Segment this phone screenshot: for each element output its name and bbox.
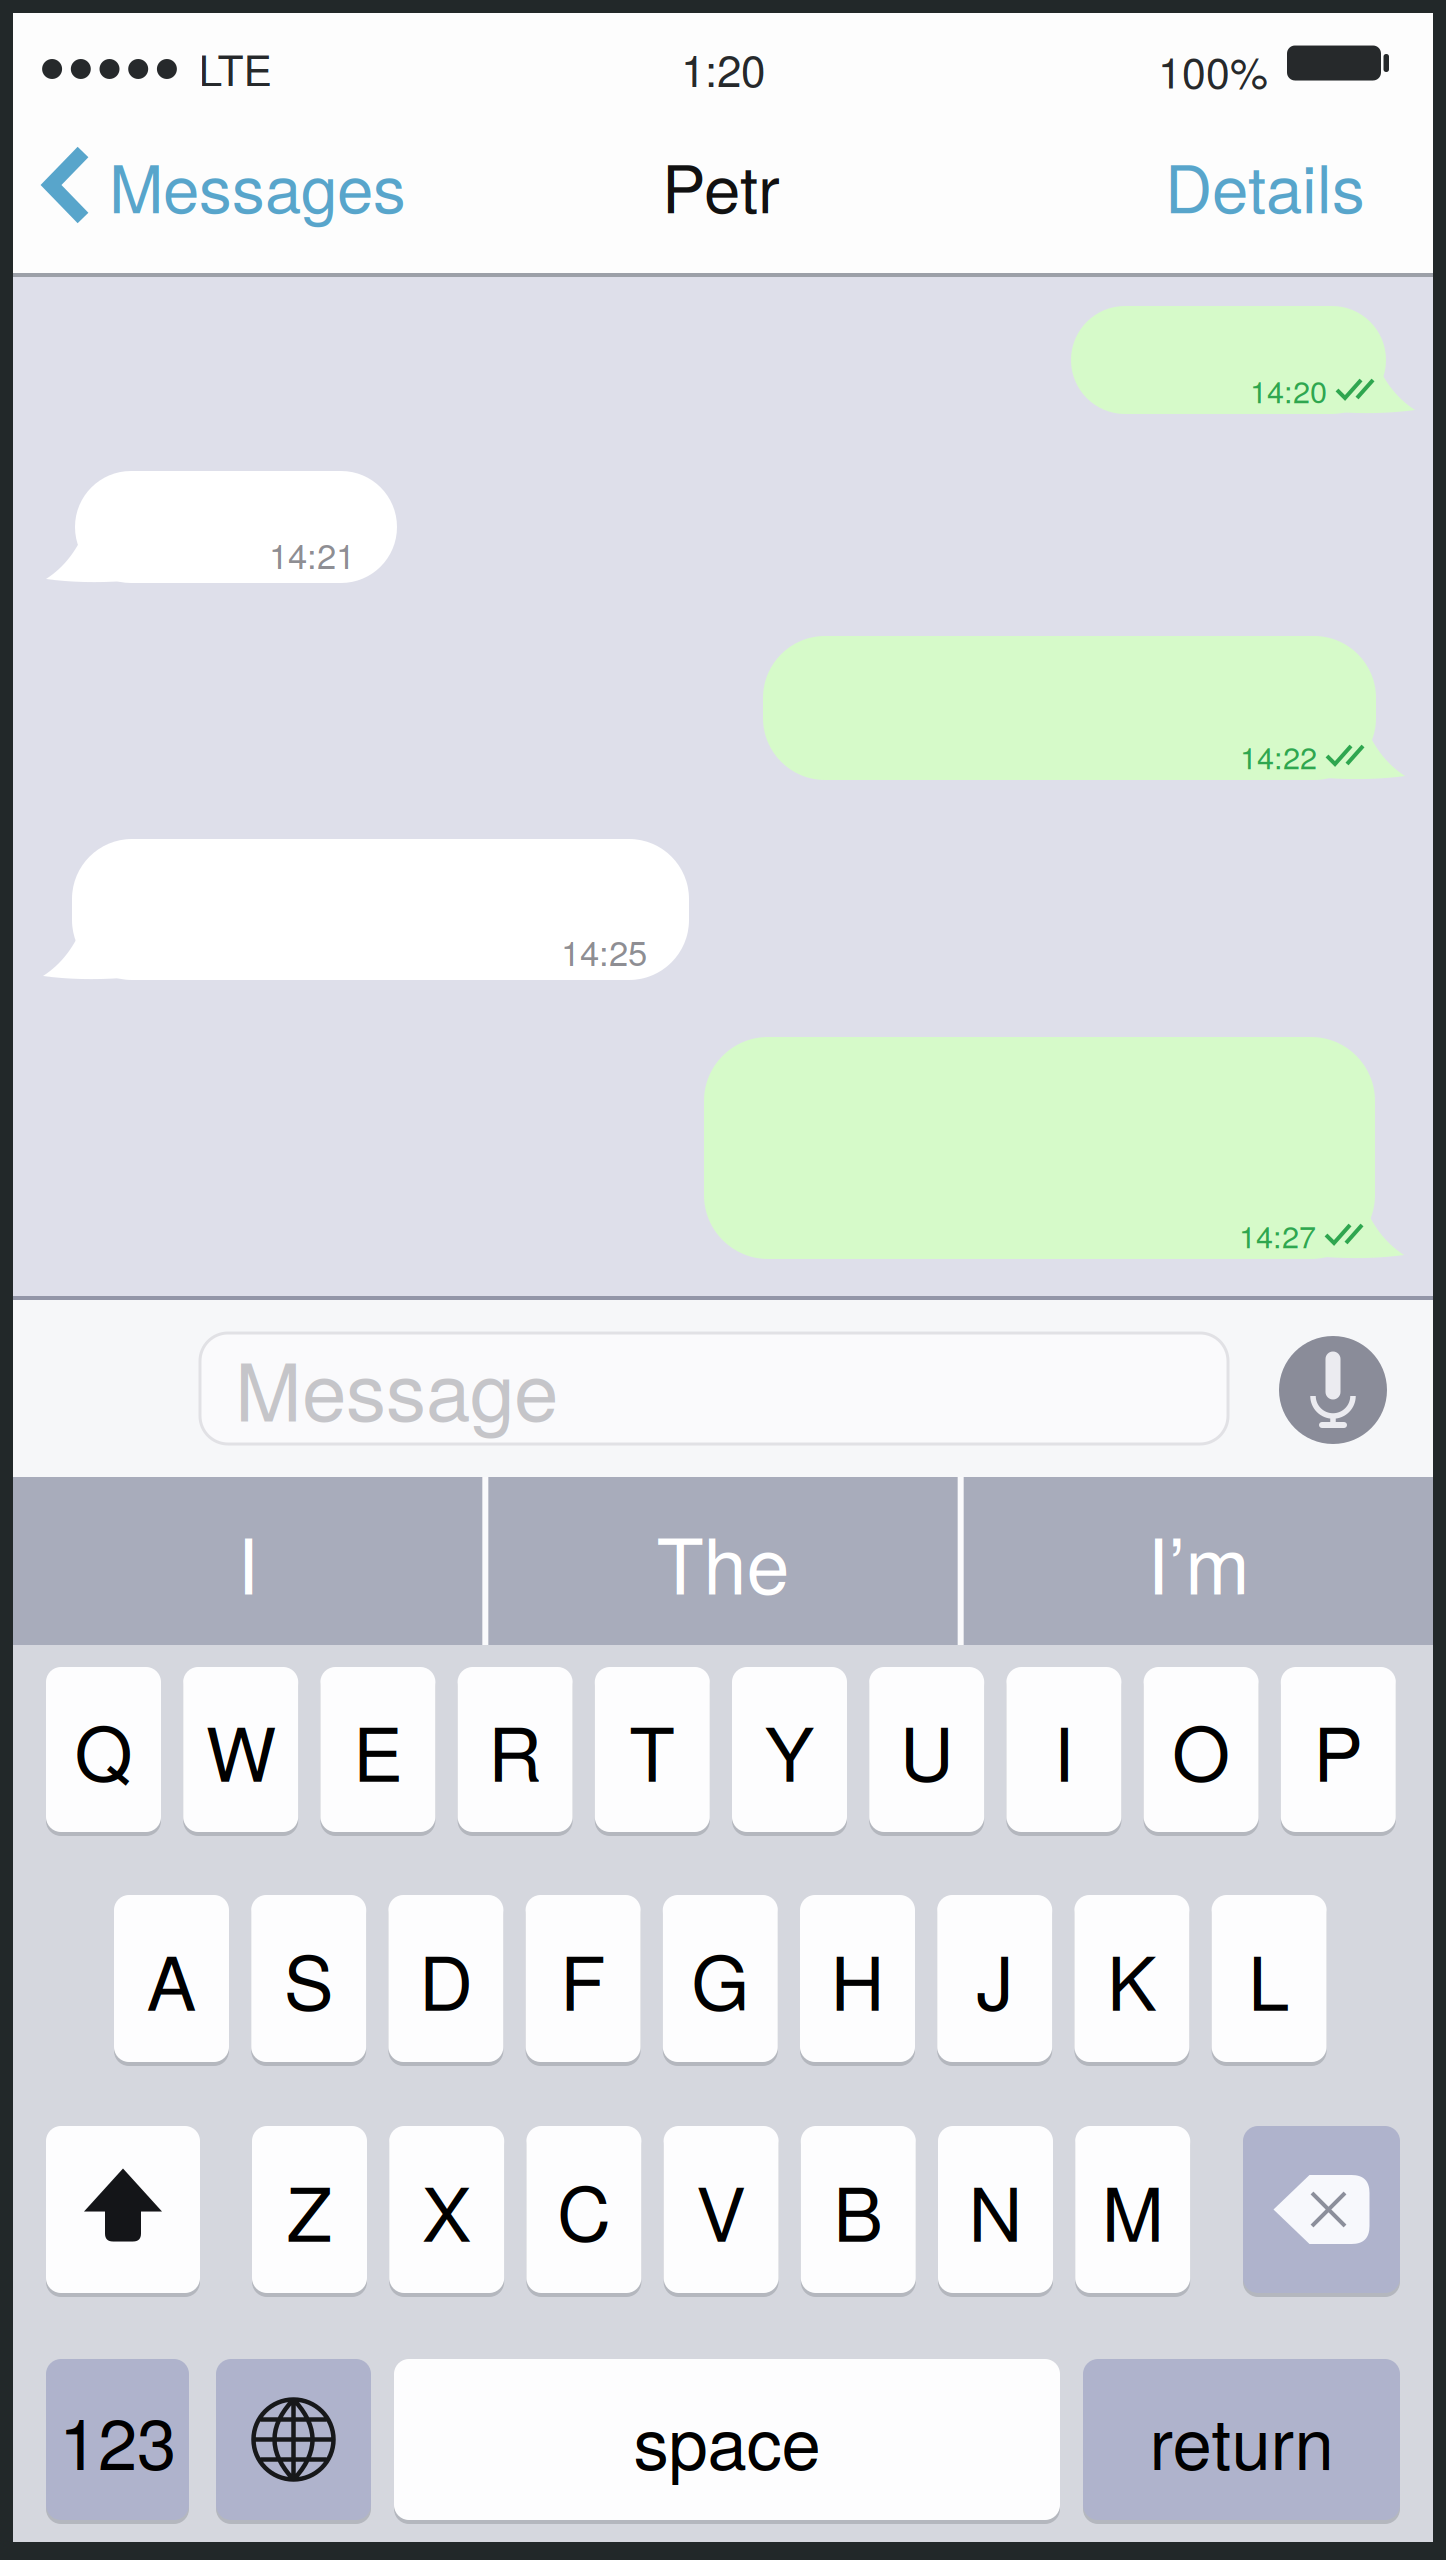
button[interactable]: A [114, 1893, 229, 2064]
staticText: S [284, 1925, 334, 2032]
button[interactable]: J [937, 1893, 1052, 2064]
staticText: W [206, 1696, 276, 1803]
button[interactable]: Messages [43, 130, 563, 240]
staticText: The [656, 1506, 789, 1616]
button[interactable]: L [1212, 1893, 1327, 2064]
staticText: T [629, 1696, 675, 1803]
staticText: G [691, 1925, 749, 2032]
button[interactable]: The [488, 1477, 958, 1645]
staticText: N [968, 2156, 1022, 2263]
button[interactable]: Next keyboard [216, 2357, 371, 2522]
button[interactable]: Numbers [46, 2357, 189, 2522]
staticText: A [146, 1925, 196, 2032]
staticText: R [488, 1696, 542, 1803]
staticText: Petr [662, 138, 780, 232]
staticText: 14:21 [269, 529, 355, 579]
button[interactable]: I’m [964, 1477, 1433, 1645]
staticText: Y [764, 1696, 814, 1803]
button[interactable]: Y [732, 1665, 847, 1834]
staticText: 1:20 [681, 36, 765, 99]
staticText: M [1102, 2156, 1164, 2263]
button[interactable]: U [869, 1665, 984, 1834]
button[interactable]: R [458, 1665, 573, 1834]
staticText: 14:27 [1239, 1213, 1316, 1257]
button[interactable]: E [320, 1665, 435, 1834]
staticText: U [900, 1696, 954, 1803]
staticText: Messages [109, 138, 406, 232]
button[interactable]: space [394, 2357, 1060, 2522]
staticText: P [1313, 1696, 1363, 1803]
button[interactable]: W [183, 1665, 298, 1834]
staticText: X [422, 2156, 472, 2263]
button[interactable]: Message [200, 1333, 1228, 1444]
staticText: Message [235, 1330, 558, 1444]
staticText: V [696, 2156, 746, 2263]
button[interactable]: Dictate [1279, 1336, 1387, 1444]
button[interactable]: Z [252, 2124, 367, 2295]
staticText: E [353, 1696, 403, 1803]
button[interactable]: M [1075, 2124, 1190, 2295]
staticText: 100% [1158, 39, 1268, 101]
button[interactable]: G [663, 1893, 778, 2064]
button[interactable]: S [251, 1893, 366, 2064]
staticText: I [1053, 1696, 1074, 1803]
staticText: space [633, 2389, 820, 2490]
button[interactable]: T [595, 1665, 710, 1834]
staticText: C [557, 2156, 611, 2263]
button[interactable]: I [1006, 1665, 1121, 1834]
staticText: 14:22 [1240, 734, 1317, 778]
staticText: F [560, 1925, 606, 2032]
button[interactable]: N [938, 2124, 1053, 2295]
staticText: K [1107, 1925, 1157, 2032]
staticText: Z [286, 2156, 332, 2263]
button[interactable]: K [1074, 1893, 1189, 2064]
button[interactable]: O [1144, 1665, 1259, 1834]
button[interactable]: Delete [1243, 2124, 1400, 2295]
staticText: J [976, 1925, 1013, 2032]
button[interactable]: B [801, 2124, 916, 2295]
button[interactable]: Shift [46, 2124, 200, 2295]
staticText: L [1248, 1925, 1290, 2032]
staticText: Q [74, 1696, 132, 1803]
staticText: return [1149, 2389, 1333, 2490]
staticText: Details [1165, 138, 1365, 232]
staticText: B [833, 2156, 883, 2263]
button[interactable]: V [664, 2124, 779, 2295]
button[interactable]: X [389, 2124, 504, 2295]
button[interactable]: P [1281, 1665, 1396, 1834]
button[interactable]: C [526, 2124, 641, 2295]
staticText: 14:25 [561, 926, 647, 976]
button[interactable]: Q [46, 1665, 161, 1834]
button[interactable]: D [388, 1893, 503, 2064]
staticText: O [1172, 1696, 1230, 1803]
staticText: 14:20 [1250, 368, 1327, 412]
staticText: LTE [198, 37, 271, 99]
staticText: I [237, 1506, 258, 1616]
staticText: I’m [1147, 1506, 1249, 1616]
staticText: H [830, 1925, 884, 2032]
staticText: D [419, 1925, 473, 2032]
button[interactable]: F [526, 1893, 641, 2064]
staticText: 123 [59, 2389, 176, 2490]
button[interactable]: return [1083, 2357, 1400, 2522]
button[interactable]: H [800, 1893, 915, 2064]
button[interactable]: Details [1065, 138, 1365, 232]
button[interactable]: I [13, 1477, 482, 1645]
